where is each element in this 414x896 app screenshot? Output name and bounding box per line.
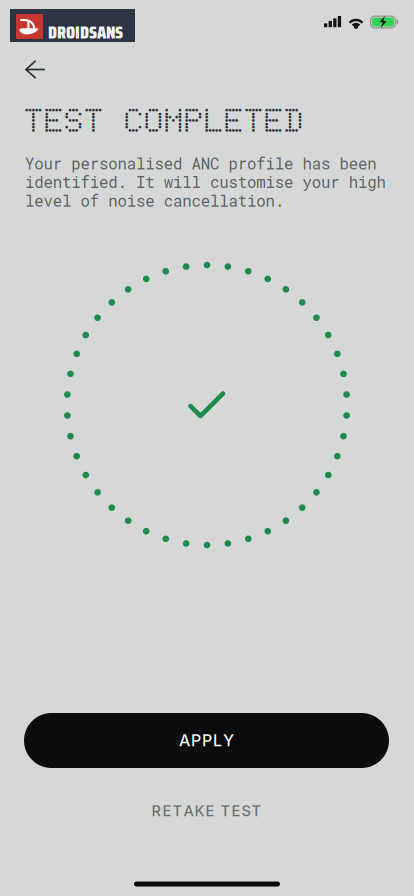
button[interactable]: R E T A K E T E S T: [24, 792, 389, 830]
button[interactable]: Back: [0, 44, 66, 93]
staticText: DROIDSANS: [48, 18, 123, 46]
staticText: A P P L Y: [179, 731, 234, 750]
staticText: R E T A K E T E S T: [151, 802, 261, 820]
staticText: Your personalised ANC profile has been i…: [25, 154, 385, 210]
staticText: TEST COMPLETED: [25, 100, 305, 140]
button[interactable]: A P P L Y: [24, 713, 389, 768]
